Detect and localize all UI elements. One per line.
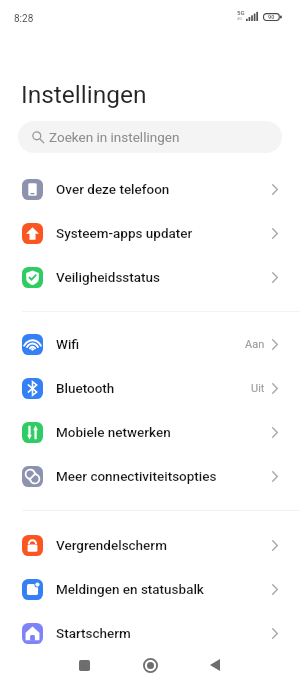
- button[interactable]: Home: [128, 647, 173, 683]
- staticText: 5G: [237, 9, 245, 16]
- button[interactable]: Bluetooth: [0, 366, 300, 410]
- staticText: Zoeken in instellingen: [49, 129, 180, 145]
- staticText: Meer connectiviteitsopties: [56, 468, 217, 484]
- staticText: Aan: [245, 338, 265, 351]
- staticText: Meldingen en statusbalk: [56, 581, 204, 597]
- button[interactable]: Wifi: [0, 322, 300, 366]
- button[interactable]: Systeem-apps updater: [0, 211, 300, 255]
- staticText: Over deze telefoon: [56, 181, 170, 197]
- staticText: Veiligheidsstatus: [56, 269, 161, 285]
- button[interactable]: Recent apps: [62, 647, 107, 683]
- staticText: Bluetooth: [56, 380, 115, 396]
- button[interactable]: Vergrendelscherm: [0, 523, 300, 567]
- staticText: Systeem-apps updater: [56, 225, 193, 241]
- button[interactable]: Meer connectiviteitsopties: [0, 454, 300, 498]
- button[interactable]: Mobiele netwerken: [0, 410, 300, 454]
- button[interactable]: Meldingen en statusbalk: [0, 567, 300, 611]
- staticText: Vergrendelscherm: [56, 537, 167, 553]
- staticText: Uit: [251, 382, 265, 395]
- button[interactable]: Veiligheidsstatus: [0, 255, 300, 299]
- staticText: 8:28: [14, 13, 34, 25]
- staticText: 4G: [237, 16, 242, 21]
- button[interactable]: Startscherm: [0, 611, 300, 655]
- button[interactable]: Over deze telefoon: [0, 167, 300, 211]
- staticText: Mobiele netwerken: [56, 424, 171, 440]
- button[interactable]: Zoeken in instellingen: [18, 121, 282, 153]
- staticText: 90: [268, 14, 275, 20]
- staticText: Instellingen: [21, 80, 147, 109]
- button[interactable]: Back: [192, 647, 237, 683]
- staticText: Wifi: [56, 336, 80, 352]
- staticText: Startscherm: [56, 625, 131, 641]
